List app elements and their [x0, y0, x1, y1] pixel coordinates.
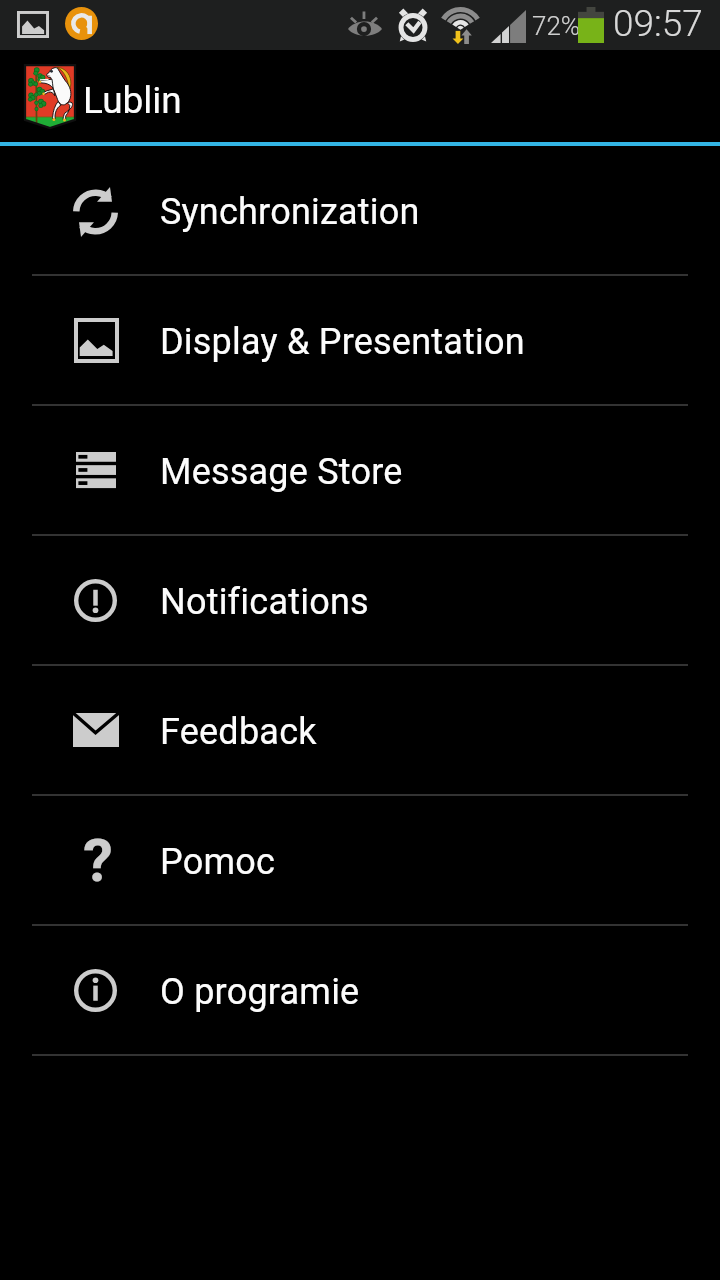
staticText: Pomoc	[160, 841, 276, 883]
staticText: Message Store	[160, 451, 403, 493]
button[interactable]: O programie	[0, 926, 720, 1054]
staticText: Lublin	[83, 79, 182, 122]
button[interactable]: Message Store	[0, 406, 720, 534]
staticText: Synchronization	[160, 191, 420, 233]
staticText: 09:57	[613, 2, 703, 45]
staticText: O programie	[160, 971, 360, 1013]
button[interactable]: Feedback	[0, 666, 720, 794]
staticText: 72%	[532, 11, 581, 41]
staticText: Notifications	[160, 581, 369, 623]
button[interactable]: Lublin, home	[0, 50, 200, 142]
button[interactable]: Display & Presentation	[0, 276, 720, 404]
staticText: ?	[83, 825, 113, 895]
staticText: Display & Presentation	[160, 321, 525, 363]
button[interactable]: Notifications	[0, 536, 720, 664]
button[interactable]: ?	[0, 796, 720, 924]
button[interactable]: Synchronization	[0, 146, 720, 274]
staticText: Feedback	[160, 711, 317, 753]
